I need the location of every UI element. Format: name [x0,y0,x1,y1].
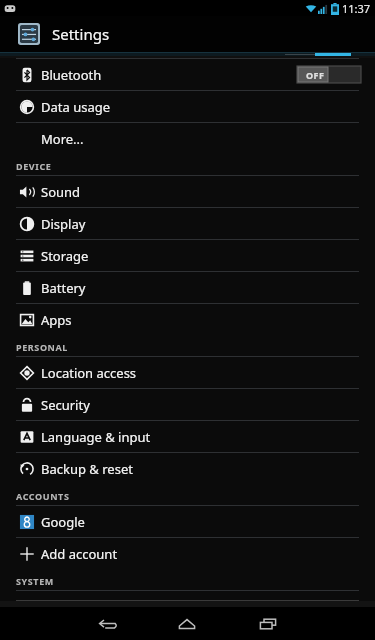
staticText: Battery [41,279,86,297]
staticText: Location access [41,364,137,382]
staticText: PERSONAL [16,341,68,353]
staticText: 11:37 [342,1,371,16]
button[interactable]: Display [0,208,375,239]
staticText: Date & time [41,598,114,616]
staticText: Security [41,396,90,414]
button[interactable]: Apps [0,304,375,335]
button[interactable]: Home [167,607,207,640]
staticText: Data usage [41,98,111,116]
staticText: Bluetooth [41,66,102,84]
button[interactable]: Add account [0,538,375,569]
button[interactable]: Storage [0,240,375,271]
button[interactable]: Sound [0,176,375,207]
button[interactable]: Bluetooth [0,59,375,90]
staticText: Google [41,513,85,531]
staticText: Language & input [41,428,151,446]
staticText: OFF [306,69,325,81]
staticText: Settings [52,24,110,44]
staticText: ACCOUNTS [16,490,70,502]
button[interactable]: Bluetooth toggle, off [297,66,361,83]
staticText: DEVICE [16,160,52,172]
button[interactable]: Recent apps [248,607,288,640]
button[interactable]: Back [88,607,128,640]
button[interactable]: Battery [0,272,375,303]
staticText: Backup & reset [41,460,133,478]
button[interactable]: Location access [0,357,375,388]
button[interactable]: More... [0,123,375,154]
staticText: Apps [41,311,72,329]
button[interactable]: Security [0,389,375,420]
button[interactable]: Google [0,506,375,537]
staticText: SYSTEM [16,575,54,587]
button[interactable]: Language & input [0,421,375,452]
staticText: More... [41,130,84,148]
button[interactable]: Backup & reset [0,453,375,484]
staticText: Display [41,215,86,233]
button[interactable]: Data usage [0,91,375,122]
button[interactable]: Date & time [0,591,375,622]
staticText: Add account [41,545,118,563]
staticText: Storage [41,247,89,265]
staticText: Sound [41,183,81,201]
